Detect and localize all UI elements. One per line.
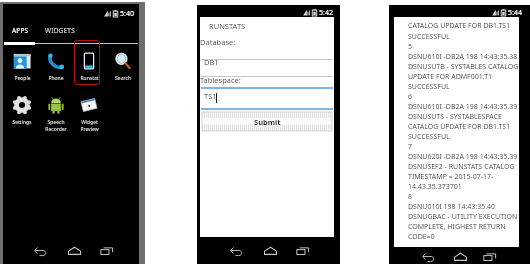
button[interactable]: Phone	[39, 50, 73, 82]
staticText: 5:40	[120, 9, 134, 18]
staticText: Search	[115, 75, 131, 82]
button[interactable]: Recent apps	[98, 242, 116, 258]
button[interactable]: Runstat	[72, 50, 106, 82]
button[interactable]: Home	[261, 242, 279, 258]
button[interactable]: Home	[65, 242, 83, 258]
staticText: People	[14, 75, 31, 82]
staticText: DB1	[204, 57, 219, 67]
button[interactable]: Back	[31, 242, 49, 258]
staticText: Submit	[254, 117, 281, 127]
button[interactable]: Recent apps	[294, 242, 312, 258]
staticText: RUNSTATS	[209, 21, 246, 31]
staticText: Speech Recorder	[45, 119, 67, 133]
button[interactable]: Back	[419, 248, 437, 264]
staticText: Runstat	[80, 75, 99, 82]
button[interactable]: Submit	[202, 112, 332, 131]
staticText: Phone	[48, 75, 64, 82]
button[interactable]: People	[5, 50, 39, 82]
staticText: TS1	[204, 91, 217, 101]
staticText: WIDGETS	[45, 26, 75, 35]
staticText: 5:42	[319, 8, 333, 17]
staticText: Database:	[200, 37, 236, 47]
button[interactable]: Settings	[5, 94, 39, 126]
button[interactable]: Widget Preview	[72, 94, 106, 133]
button[interactable]: Back	[227, 242, 245, 258]
button[interactable]: WIDGETS	[42, 24, 78, 37]
button[interactable]: Recent apps	[481, 248, 499, 264]
button[interactable]: Home	[451, 248, 469, 264]
staticText: APPS	[12, 26, 29, 35]
button[interactable]: Speech Recorder	[39, 94, 73, 133]
staticText: 5:44	[508, 8, 522, 17]
button[interactable]: APPS	[9, 24, 32, 37]
staticText: CATALOG UPDATE FOR DB1.TS1 SUCCESSFUL 5 …	[408, 21, 519, 241]
button[interactable]: Search	[106, 50, 140, 82]
staticText: Settings	[12, 119, 32, 126]
staticText: Widget Preview	[80, 119, 99, 133]
staticText: Tablespace:	[200, 75, 241, 85]
